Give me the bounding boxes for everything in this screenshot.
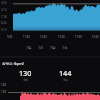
staticText: 8.46 — [1, 21, 7, 25]
button[interactable]: 1주 — [35, 44, 47, 51]
staticText: 9:00 — [7, 35, 13, 39]
staticText: 13:00 — [40, 35, 47, 39]
staticText: 1주 — [38, 45, 44, 50]
button[interactable]: 1달 — [47, 44, 59, 51]
staticText: 11:00 — [23, 35, 30, 39]
button[interactable]: 1년 — [59, 44, 71, 51]
button[interactable]: 1일 — [23, 44, 35, 51]
staticText: 19:00 — [92, 35, 99, 39]
staticText: 120 — [1, 90, 7, 94]
staticText: 4.56 — [1, 1, 7, 5]
staticText: 1일 — [26, 45, 32, 50]
staticText: 최고 — [63, 78, 69, 81]
staticText: 7.28 — [1, 15, 7, 19]
staticText: 144 — [59, 68, 72, 78]
staticText: 4.13 — [1, 8, 7, 12]
staticText: 15:00 — [58, 35, 65, 39]
staticText: 130 — [19, 68, 32, 78]
staticText: 17:00 — [75, 35, 82, 39]
staticText: 10.0 — [1, 28, 7, 32]
staticText: 최저 — [23, 78, 29, 81]
staticText: 140 — [1, 83, 7, 87]
staticText: 심박수 (bpm) — [2, 61, 24, 66]
staticText: 1년 — [62, 45, 68, 50]
staticText: 1달 — [50, 45, 56, 50]
